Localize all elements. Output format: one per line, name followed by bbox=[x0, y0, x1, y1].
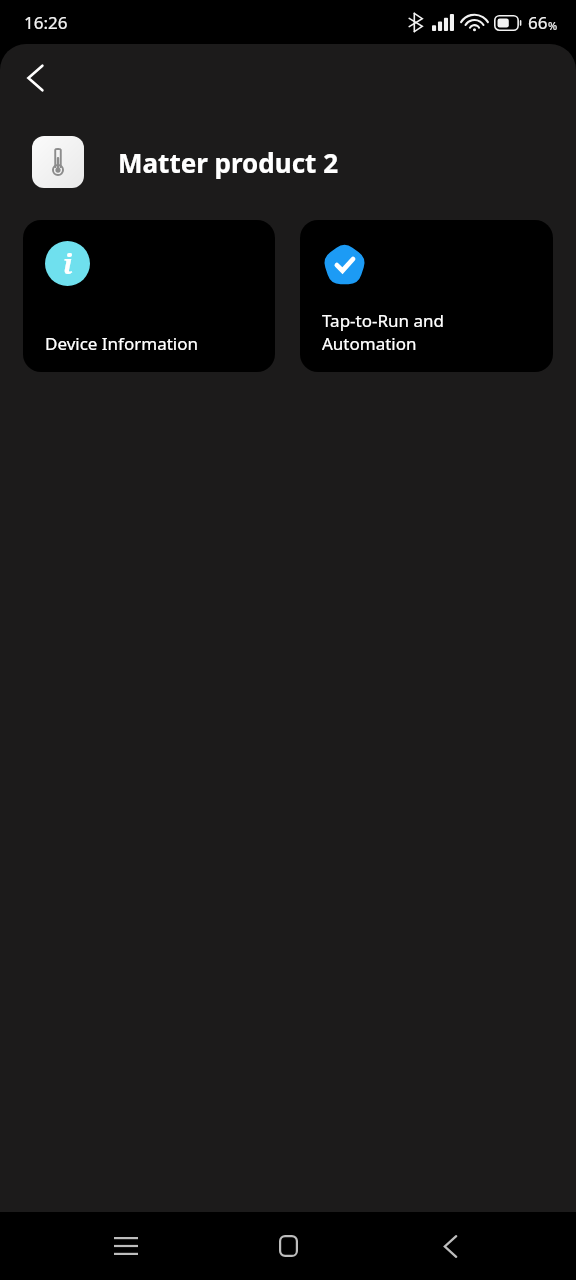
button[interactable]: Recent apps bbox=[90, 1212, 162, 1280]
staticText: 66 bbox=[528, 11, 548, 34]
button[interactable]: Home bbox=[252, 1212, 324, 1280]
staticText: Tap-to-Run and Automation bbox=[322, 309, 444, 355]
staticText: Device Information bbox=[45, 332, 199, 355]
button[interactable]: Back bbox=[8, 50, 64, 106]
staticText: % bbox=[548, 18, 558, 33]
staticText: 16:26 bbox=[24, 11, 68, 34]
button[interactable]: i bbox=[23, 220, 275, 372]
button[interactable]: Back bbox=[414, 1212, 486, 1280]
button[interactable]: Tap-to-Run and Automation bbox=[300, 220, 553, 372]
staticText: Matter product 2 bbox=[118, 145, 339, 180]
staticText: i bbox=[63, 245, 73, 282]
